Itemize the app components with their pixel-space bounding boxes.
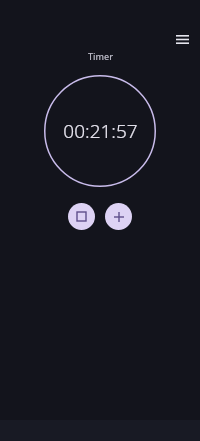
button[interactable]: Add time — [105, 203, 132, 230]
button[interactable]: Menu — [168, 25, 196, 53]
button[interactable]: Stop — [68, 203, 95, 230]
staticText: Timer — [88, 50, 113, 62]
staticText: 00:21:57 — [63, 118, 138, 144]
